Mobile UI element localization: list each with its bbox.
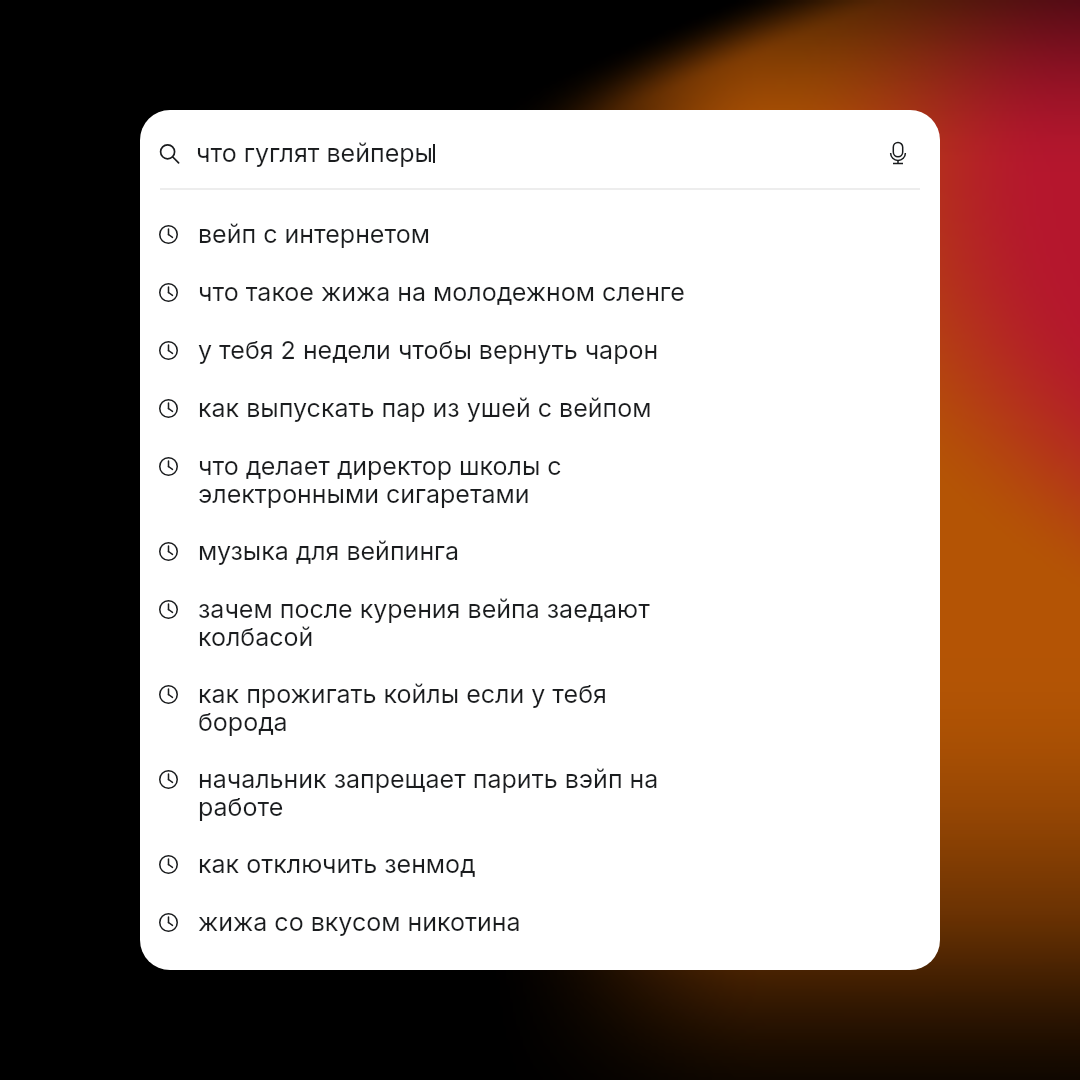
button[interactable]: как выпускать пар из ушей с вейпом <box>140 380 940 438</box>
staticText: что делает директор школы с электронными… <box>198 452 686 508</box>
staticText: музыка для вейпинга <box>198 537 460 565</box>
staticText: как выпускать пар из ушей с вейпом <box>198 394 652 422</box>
button[interactable]: что гуглят вейперы <box>140 110 940 188</box>
button[interactable]: что такое жижа на молодежном сленге <box>140 264 940 322</box>
button[interactable]: у тебя 2 недели чтобы вернуть чарон <box>140 322 940 380</box>
button[interactable]: начальник запрещает парить вэйп на работ… <box>140 751 940 836</box>
staticText: что такое жижа на молодежном сленге <box>198 278 685 306</box>
button[interactable]: что делает директор школы с электронными… <box>140 438 940 523</box>
staticText: начальник запрещает парить вэйп на работ… <box>198 765 686 821</box>
staticText: как прожигать койлы если у тебя борода <box>198 680 686 736</box>
button[interactable]: музыка для вейпинга <box>140 523 940 581</box>
staticText: что гуглят вейперы <box>196 138 433 168</box>
button[interactable]: Voice search <box>883 138 913 168</box>
button[interactable]: жижа со вкусом никотина <box>140 894 940 952</box>
staticText: вейп с интернетом <box>198 220 430 248</box>
staticText: зачем после курения вейпа заедают колбас… <box>198 595 686 651</box>
button[interactable]: как прожигать койлы если у тебя борода <box>140 666 940 751</box>
button[interactable]: зачем после курения вейпа заедают колбас… <box>140 581 940 666</box>
button[interactable]: как отключить зенмод <box>140 836 940 894</box>
staticText: у тебя 2 недели чтобы вернуть чарон <box>198 336 659 364</box>
staticText: как отключить зенмод <box>198 850 476 878</box>
staticText: жижа со вкусом никотина <box>198 908 521 936</box>
button[interactable]: вейп с интернетом <box>140 206 940 264</box>
